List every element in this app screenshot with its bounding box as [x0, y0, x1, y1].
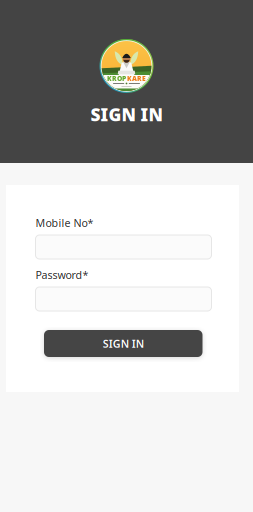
staticText: Mobile No* — [35, 216, 93, 230]
button[interactable]: SIGN IN — [44, 330, 202, 357]
staticText: SIGN IN — [103, 336, 144, 351]
staticText: Password* — [35, 268, 88, 282]
staticText: KROP — [107, 74, 126, 83]
staticText: KARE — [127, 74, 146, 83]
staticText: SIGN IN — [90, 103, 162, 126]
